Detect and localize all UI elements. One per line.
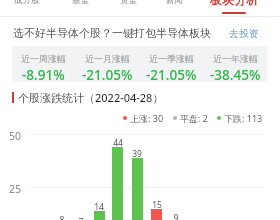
staticText: 39 — [126, 148, 148, 160]
staticText: -38.45% — [210, 66, 261, 82]
button[interactable]: 近一周涨幅 — [12, 46, 75, 82]
staticText: 平盘: 2 — [180, 112, 208, 124]
staticText: 9 — [165, 212, 187, 220]
staticText: 资金 — [120, 0, 137, 6]
button[interactable]: 板块分析 — [203, 0, 265, 17]
staticText: 50 — [1, 129, 21, 143]
button[interactable]: 近一月涨幅 — [75, 46, 139, 82]
button[interactable]: 资金 — [113, 0, 144, 17]
staticText: 新闻 — [166, 0, 183, 6]
button[interactable]: 选不好半导体个股？一键打包半导体板块 — [0, 17, 280, 42]
staticText: 25 — [1, 182, 21, 196]
staticText: 14 — [88, 201, 110, 213]
button[interactable]: 近一季涨幅 — [139, 46, 203, 82]
staticText: 板块分析 — [210, 0, 258, 7]
button[interactable]: 近一年涨幅 — [203, 46, 267, 82]
staticText: 15 — [146, 199, 168, 211]
staticText: 近一年涨幅 — [213, 53, 258, 64]
staticText: 成分股 — [14, 0, 40, 6]
staticText: 上涨: 30 — [130, 112, 164, 124]
staticText: -21.05% — [82, 66, 133, 82]
button[interactable]: 个股涨跌统计（2022-04-28） — [0, 88, 280, 106]
staticText: 近一月涨幅 — [85, 53, 130, 64]
button[interactable]: 成分股 — [7, 0, 47, 17]
staticText: -8.91% — [22, 66, 65, 82]
staticText: 去投资 — [229, 27, 259, 40]
staticText: 个股涨跌统计（2022-04-28） — [18, 90, 164, 105]
staticText: 近一周涨幅 — [21, 53, 66, 64]
button[interactable]: 新闻 — [159, 0, 190, 17]
button[interactable]: 基金 — [65, 0, 96, 17]
staticText: 选不好半导体个股？一键打包半导体板块 — [13, 26, 211, 40]
staticText: -21.05% — [146, 66, 197, 82]
staticText: 44 — [107, 137, 129, 149]
staticText: 基金 — [72, 0, 89, 6]
staticText: 近一季涨幅 — [149, 53, 194, 64]
staticText: 7 — [70, 216, 92, 220]
staticText: 下跌: 113 — [224, 112, 263, 124]
staticText: 8 — [51, 214, 73, 220]
